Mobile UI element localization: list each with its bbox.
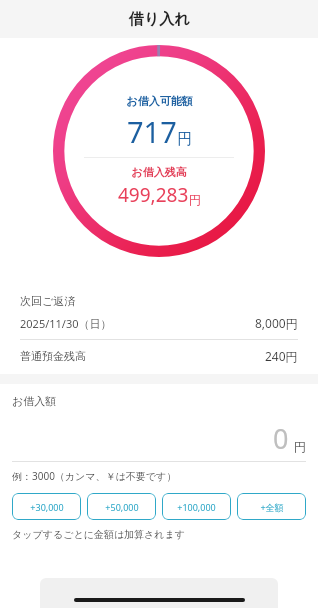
staticText: +100,000 [177, 501, 216, 513]
button[interactable]: 借り入れる [40, 578, 278, 608]
staticText: 240円 [265, 348, 298, 364]
staticText: 2025/11/30（日） [20, 316, 112, 331]
staticText: +50,000 [105, 501, 139, 513]
staticText: 円 [177, 130, 192, 149]
button[interactable]: +100,000 [162, 493, 231, 520]
staticText: 8,000円 [255, 315, 298, 331]
staticText: 717 [127, 112, 177, 151]
staticText: 円 [189, 192, 201, 207]
staticText: 借り入れ [129, 10, 190, 29]
button[interactable]: +全額 [237, 493, 306, 520]
staticText: お借入可能額 [126, 94, 193, 108]
staticText: 次回ご返済 [20, 294, 76, 308]
staticText: 499,283 [118, 182, 189, 208]
staticText: お借入額 [12, 394, 57, 408]
staticText: 普通預金残高 [20, 349, 86, 363]
staticText: タップするごとに金額は加算されます [12, 528, 186, 541]
staticText: 0 [273, 420, 289, 457]
button[interactable]: +30,000 [12, 493, 81, 520]
button[interactable]: +50,000 [87, 493, 156, 520]
staticText: 例：3000（カンマ、￥は不要です） [12, 469, 177, 483]
staticText: +30,000 [30, 501, 64, 513]
staticText: 円 [294, 439, 306, 454]
staticText: お借入残高 [131, 165, 187, 179]
staticText: +全額 [260, 501, 284, 513]
